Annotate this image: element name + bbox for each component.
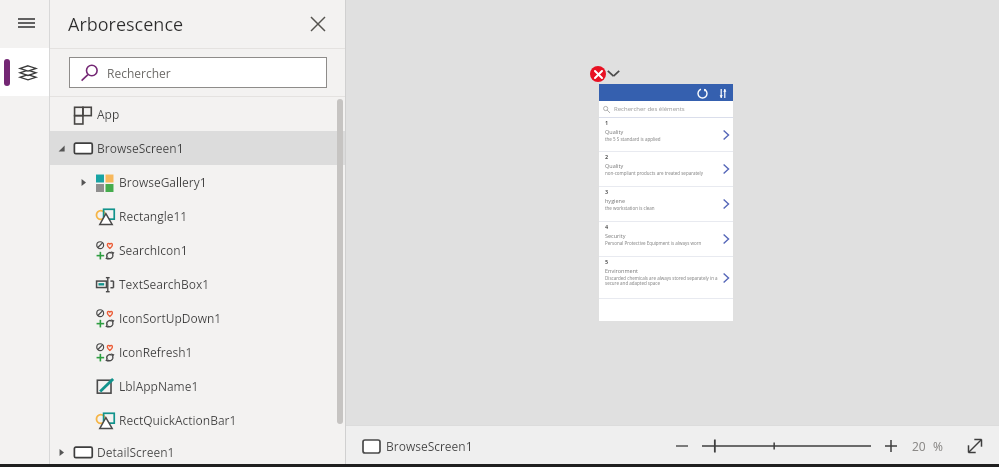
button[interactable]: Close preview	[590, 66, 606, 82]
button[interactable]: 1	[599, 118, 733, 151]
button[interactable]: Fit to screen	[960, 425, 990, 467]
button[interactable]: Refresh	[695, 86, 709, 100]
button[interactable]: Rechercher	[69, 57, 327, 88]
staticText: IconRefresh1	[119, 344, 193, 360]
button[interactable]: LblAppName1	[50, 369, 345, 403]
button[interactable]: BrowseGallery1	[50, 165, 345, 199]
staticText: BrowseGallery1	[119, 174, 207, 190]
button[interactable]: 2	[599, 152, 733, 186]
staticText: Arborescence	[68, 12, 184, 37]
staticText: Personal Protective Equipment is always …	[605, 240, 718, 246]
button[interactable]: 4	[599, 222, 733, 256]
staticText: Quality	[605, 128, 624, 135]
staticText: DetailScreen1	[97, 444, 175, 460]
staticText: 2	[605, 153, 609, 160]
staticText: the workstation is clean	[605, 205, 718, 211]
button[interactable]: RectQuickActionBar1	[50, 403, 345, 437]
staticText: Rechercher des éléments	[614, 105, 685, 113]
button[interactable]: App	[50, 97, 345, 131]
button[interactable]: Zoom out	[669, 425, 695, 467]
staticText: non-compliant products are treated separ…	[605, 170, 718, 176]
staticText: BrowseScreen1	[386, 438, 473, 454]
button[interactable]: Zoom in	[879, 425, 903, 467]
staticText: Rectangle11	[119, 208, 188, 224]
button[interactable]: 3	[599, 187, 733, 221]
staticText: LblAppName1	[119, 378, 199, 394]
button[interactable]: IconSortUpDown1	[50, 301, 345, 335]
staticText: hygiene	[605, 197, 626, 204]
staticText: Rechercher	[107, 65, 171, 81]
button[interactable]: IconRefresh1	[50, 335, 345, 369]
button[interactable]: Sort	[717, 87, 729, 99]
staticText: IconSortUpDown1	[119, 310, 222, 326]
button[interactable]: Tree view	[0, 48, 50, 96]
staticText: 1	[605, 119, 609, 126]
staticText: TextSearchBox1	[119, 276, 210, 292]
button[interactable]: Expand	[605, 64, 621, 80]
staticText: Quality	[605, 162, 624, 169]
button[interactable]: DetailScreen1	[50, 437, 345, 467]
button[interactable]: TextSearchBox1	[50, 267, 345, 301]
button[interactable]: Rectangle11	[50, 199, 345, 233]
staticText: Environment	[605, 267, 639, 274]
button[interactable]: SearchIcon1	[50, 233, 345, 267]
staticText: 20	[912, 438, 926, 454]
button[interactable]: Menu	[0, 0, 50, 48]
staticText: %	[933, 438, 943, 454]
staticText: the 5 S standard is applied	[605, 136, 718, 142]
staticText: BrowseScreen1	[97, 140, 184, 156]
staticText: Security	[605, 232, 626, 239]
staticText: SearchIcon1	[119, 242, 188, 258]
staticText: RectQuickActionBar1	[119, 412, 237, 428]
button[interactable]: Close	[302, 8, 334, 40]
staticText: App	[97, 106, 120, 122]
staticText: Discarded chemicals are always stored se…	[605, 275, 718, 286]
staticText: 3	[605, 188, 609, 195]
button[interactable]: BrowseScreen1	[50, 131, 345, 165]
staticText: 4	[605, 223, 609, 230]
staticText: 5	[605, 258, 609, 265]
button[interactable]: 5	[599, 257, 733, 298]
button[interactable]: BrowseScreen1	[357, 425, 479, 467]
